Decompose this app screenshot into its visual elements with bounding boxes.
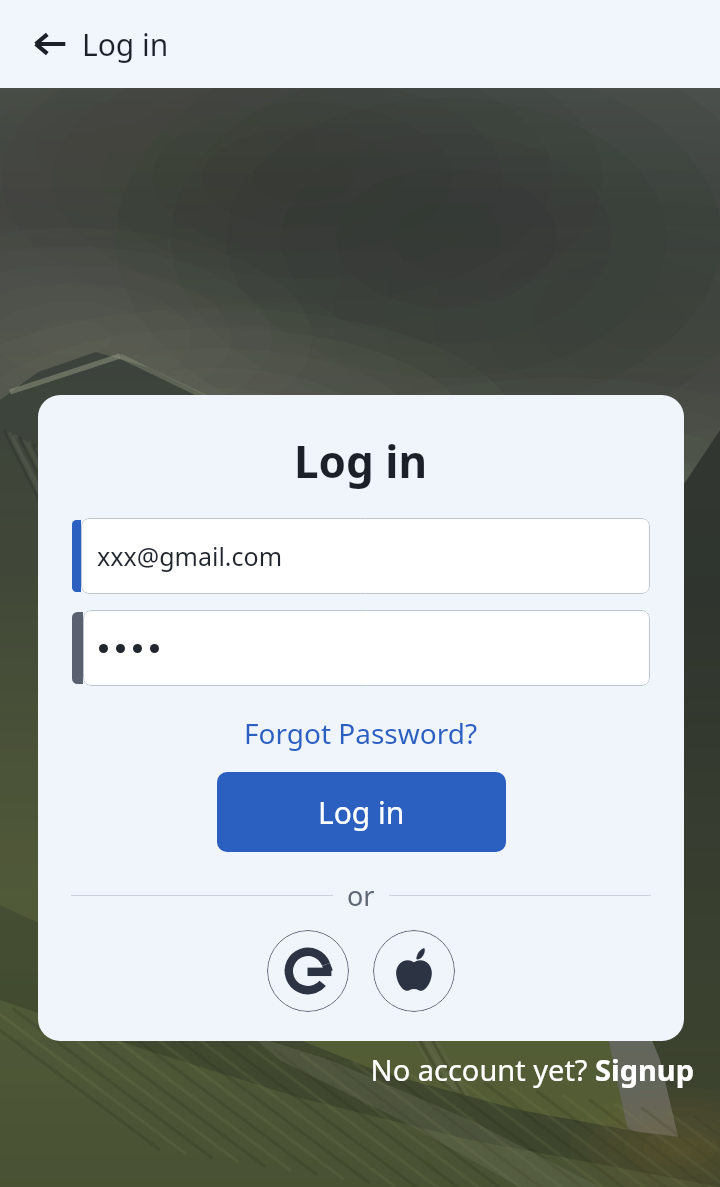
button[interactable]: Back — [22, 16, 78, 72]
staticText: No account yet? Signup — [370, 1050, 694, 1089]
button[interactable]: Log in — [217, 772, 506, 852]
staticText: xxx@gmail.com — [97, 539, 283, 573]
staticText: or — [347, 877, 375, 914]
button[interactable]: xxx@gmail.com — [72, 518, 650, 594]
button[interactable]: Sign in with Google — [267, 930, 349, 1012]
staticText: Log in — [82, 24, 169, 65]
staticText: Forgot Password? — [244, 714, 478, 752]
staticText: Log in — [294, 431, 428, 491]
staticText: Log in — [318, 792, 405, 833]
button[interactable] — [72, 610, 650, 686]
button[interactable]: Forgot Password? — [238, 712, 484, 754]
button[interactable]: No account yet? Signup — [366, 1046, 698, 1093]
button[interactable]: Sign in with Apple — [373, 930, 455, 1012]
